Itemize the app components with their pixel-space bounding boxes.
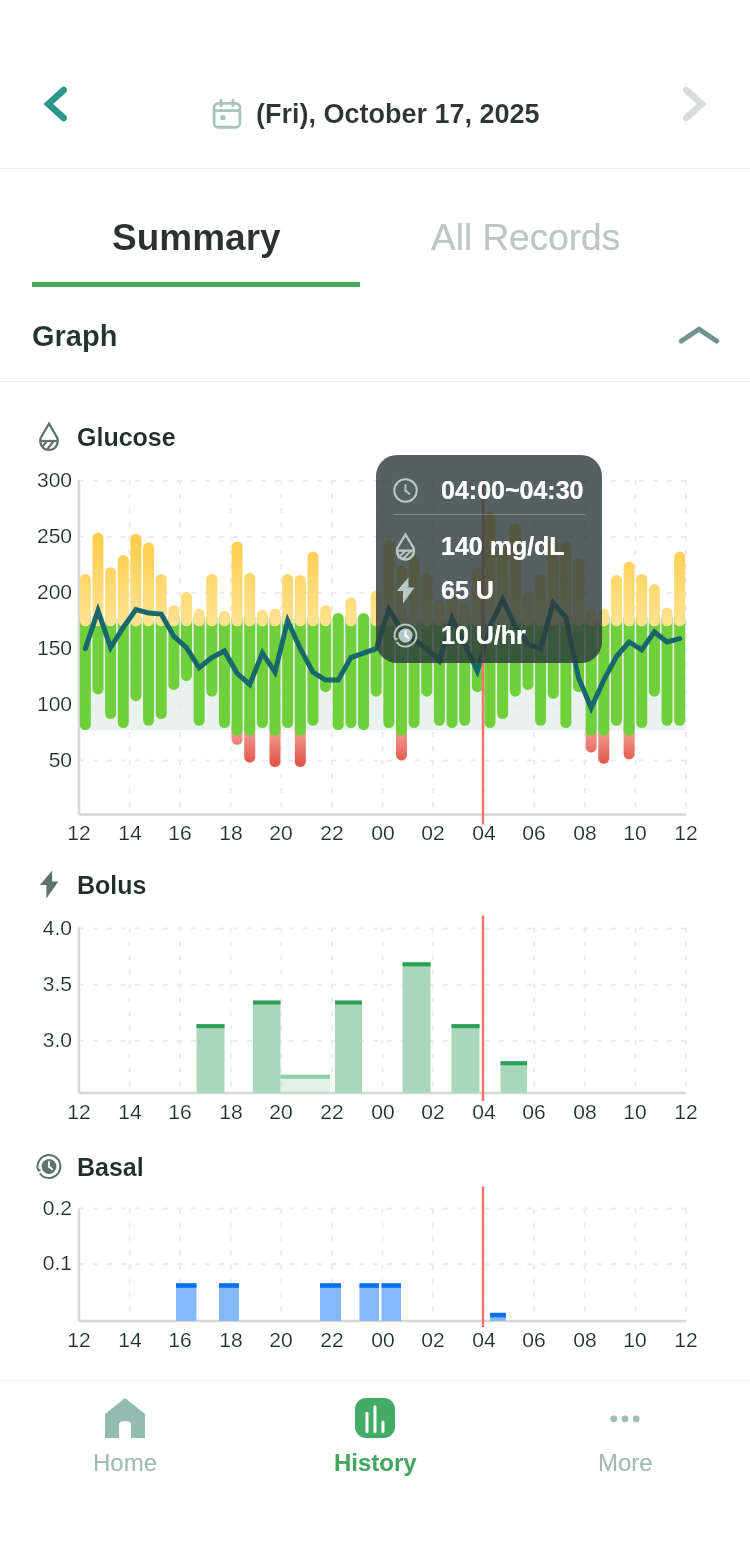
staticText: (Fri), October 17, 2025 xyxy=(256,99,540,129)
staticText: Summary xyxy=(112,217,281,258)
staticText: 08 xyxy=(560,1328,610,1351)
staticText: 08 xyxy=(560,1100,610,1123)
staticText: 16 xyxy=(155,1100,205,1123)
button[interactable]: More xyxy=(500,1381,750,1511)
staticText: 14 xyxy=(105,821,155,844)
staticText: 20 xyxy=(256,1100,306,1123)
staticText: 140 mg/dL xyxy=(441,532,565,560)
staticText: 16 xyxy=(155,1328,205,1351)
staticText: 14 xyxy=(105,1100,155,1123)
staticText: 12 xyxy=(54,821,104,844)
staticText: 0.1 xyxy=(10,1251,72,1274)
staticText: 12 xyxy=(661,821,711,844)
staticText: 06 xyxy=(509,821,559,844)
staticText: 22 xyxy=(307,821,357,844)
button[interactable]: Next day xyxy=(654,64,734,144)
staticText: 18 xyxy=(206,1100,256,1123)
staticText: 16 xyxy=(155,821,205,844)
staticText: 02 xyxy=(408,1328,458,1351)
button[interactable]: Graph xyxy=(0,290,750,381)
button[interactable]: Previous day xyxy=(16,64,96,144)
staticText: Glucose xyxy=(77,423,176,451)
staticText: 04:00~04:30 xyxy=(441,476,584,504)
staticText: 08 xyxy=(560,821,610,844)
staticText: 18 xyxy=(206,821,256,844)
button[interactable]: All Records xyxy=(375,169,750,288)
staticText: 20 xyxy=(256,821,306,844)
staticText: 300 xyxy=(10,468,72,491)
staticText: 22 xyxy=(307,1100,357,1123)
staticText: 10 xyxy=(610,1328,660,1351)
staticText: 250 xyxy=(10,524,72,547)
staticText: Basal xyxy=(77,1153,144,1181)
staticText: 50 xyxy=(10,748,72,771)
staticText: History xyxy=(334,1449,417,1476)
staticText: 65 U xyxy=(441,576,494,604)
staticText: Bolus xyxy=(77,871,147,899)
staticText: 00 xyxy=(358,821,408,844)
staticText: 04 xyxy=(459,821,509,844)
staticText: 00 xyxy=(358,1100,408,1123)
staticText: 22 xyxy=(307,1328,357,1351)
staticText: 10 xyxy=(610,821,660,844)
staticText: 00 xyxy=(358,1328,408,1351)
button[interactable]: History xyxy=(250,1381,500,1511)
staticText: 02 xyxy=(408,821,458,844)
button[interactable]: Summary xyxy=(0,169,375,288)
staticText: 0.2 xyxy=(10,1196,72,1219)
staticText: 12 xyxy=(54,1328,104,1351)
staticText: More xyxy=(598,1449,653,1476)
staticText: All Records xyxy=(431,217,621,258)
staticText: Home xyxy=(93,1449,158,1476)
staticText: 3.0 xyxy=(10,1028,72,1051)
staticText: 04 xyxy=(459,1328,509,1351)
staticText: 3.5 xyxy=(10,972,72,995)
staticText: 100 xyxy=(10,692,72,715)
staticText: 10 U/hr xyxy=(441,621,526,649)
staticText: 200 xyxy=(10,580,72,603)
staticText: 20 xyxy=(256,1328,306,1351)
staticText: 12 xyxy=(54,1100,104,1123)
staticText: 02 xyxy=(408,1100,458,1123)
staticText: 12 xyxy=(661,1328,711,1351)
button[interactable]: (Fri), October 17, 2025 xyxy=(210,97,540,131)
staticText: 14 xyxy=(105,1328,155,1351)
staticText: 04 xyxy=(459,1100,509,1123)
staticText: 150 xyxy=(10,636,72,659)
staticText: 4.0 xyxy=(10,916,72,939)
button[interactable]: Home xyxy=(0,1381,250,1511)
staticText: 18 xyxy=(206,1328,256,1351)
staticText: 12 xyxy=(661,1100,711,1123)
staticText: Graph xyxy=(32,320,118,352)
staticText: 10 xyxy=(610,1100,660,1123)
staticText: 06 xyxy=(509,1100,559,1123)
staticText: 06 xyxy=(509,1328,559,1351)
